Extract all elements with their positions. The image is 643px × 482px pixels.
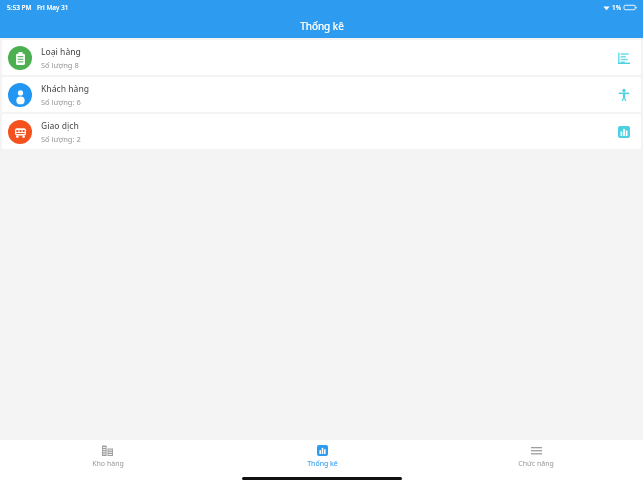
button[interactable]: View chart [613,47,635,69]
staticText: Số lượng 8 [41,60,79,70]
button[interactable]: Chức năng [429,440,643,474]
staticText: Giao dịch [41,120,79,132]
staticText: Kho hàng [92,459,124,469]
staticText: 1% [612,3,622,12]
button[interactable]: View chart [613,121,635,143]
button[interactable]: Khách hàng [2,77,641,112]
staticText: Số lượng: 2 [41,134,81,144]
button[interactable]: Loại hàng [2,40,641,75]
staticText: Khách hàng [41,83,90,95]
button[interactable]: Thống kê [215,440,429,474]
staticText: Thống kê [307,459,338,469]
staticText: 5:53 PM [7,3,32,12]
button[interactable]: View chart [613,84,635,106]
button[interactable]: Giao dịch [2,114,641,149]
staticText: Loại hàng [41,46,81,58]
staticText: Chức năng [518,459,554,469]
staticText: Số lượng: 6 [41,97,81,107]
button[interactable]: Kho hàng [0,440,215,474]
staticText: Thống kê [300,19,344,33]
staticText: Fri May 31 [37,3,69,12]
